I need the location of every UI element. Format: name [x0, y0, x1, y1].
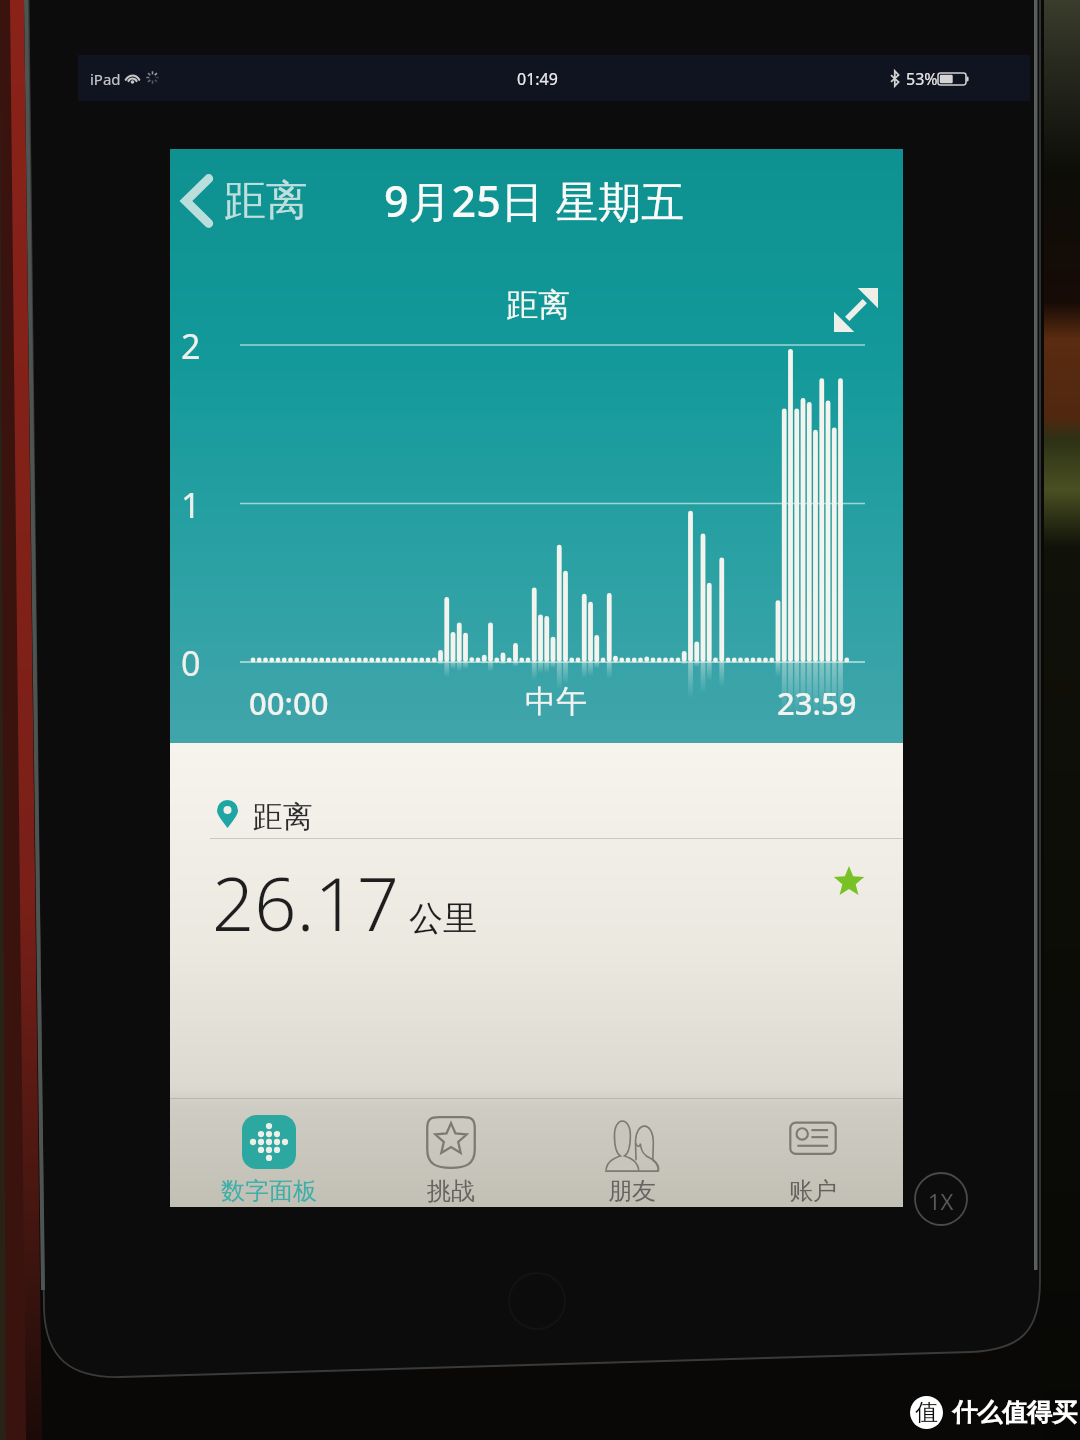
other: Back	[176, 173, 214, 229]
staticText: 公里	[409, 897, 477, 940]
staticText: 1X	[928, 1186, 954, 1216]
staticText: 53%	[906, 68, 938, 90]
staticText: iPad	[90, 69, 121, 89]
staticText: 9月25日 星期五	[384, 171, 684, 230]
button[interactable]: 账户	[722, 1100, 903, 1210]
staticText: 朋友	[608, 1176, 656, 1206]
staticText: 数字面板	[221, 1176, 317, 1206]
staticText: 值	[915, 1398, 938, 1427]
staticText: 26.17	[212, 852, 400, 953]
button[interactable]: 朋友	[541, 1100, 722, 1210]
staticText: 00:00	[249, 682, 329, 724]
button[interactable]: Back	[176, 161, 308, 241]
staticText: 什么值得买	[952, 1397, 1077, 1428]
button[interactable]: 距离	[170, 743, 903, 1095]
staticText: 距离	[224, 175, 308, 228]
staticText: 2	[181, 323, 201, 369]
staticText: 账户	[789, 1176, 837, 1206]
staticText: 挑战	[427, 1176, 475, 1206]
staticText: 1	[181, 482, 201, 528]
staticText: 距离	[253, 798, 313, 836]
button[interactable]: 数字面板	[178, 1100, 360, 1210]
button[interactable]: 挑战	[360, 1100, 541, 1210]
staticText: 0	[181, 640, 201, 686]
staticText: 01:49	[517, 68, 558, 90]
button[interactable]: Expand chart	[834, 288, 878, 332]
staticText: 距离	[506, 285, 570, 325]
staticText: 23:59	[777, 682, 857, 724]
staticText: 中午	[525, 682, 587, 721]
